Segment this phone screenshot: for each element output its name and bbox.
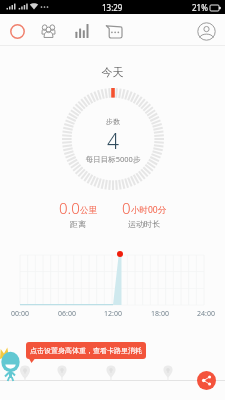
button[interactable]: Friends [34,17,62,45]
button[interactable]: Statistics [67,17,95,45]
staticText: 点击设置身高体重，查看卡路里消耗 [30,346,142,355]
staticText: 运动时长 [128,219,160,229]
staticText: 12:00 [98,309,128,319]
staticText: 每日目标5000步 [62,154,164,164]
staticText: 0.0 [59,198,80,218]
button[interactable]: Messages [100,17,128,45]
staticText: 小时00分 [131,204,167,216]
staticText: 步数 [62,117,164,126]
staticText: 0 [122,198,131,218]
staticText: 公里 [80,205,97,216]
button[interactable]: Activity [3,17,31,45]
staticText: 24:00 [191,309,221,319]
staticText: 距离 [70,219,86,229]
button[interactable]: Share [197,371,216,390]
staticText: 今天 [0,65,225,79]
staticText: 18:00 [145,309,175,319]
button[interactable]: Profile [192,17,220,45]
button[interactable]: 点击设置身高体重，查看卡路里消耗 [26,342,146,359]
staticText: 06:00 [52,309,82,319]
staticText: 21% [192,2,208,13]
staticText: 00:00 [5,309,35,319]
staticText: 13:29 [102,2,123,13]
staticText: 4 [62,127,164,156]
